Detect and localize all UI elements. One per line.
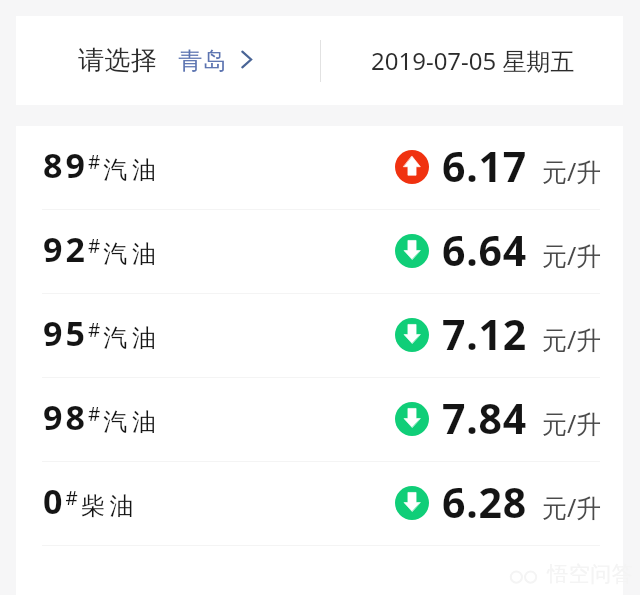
staticText: 元/升 xyxy=(542,406,602,440)
staticText: 元/升 xyxy=(542,238,602,272)
staticText: 95#汽油 xyxy=(43,310,162,356)
staticText: 7.84 xyxy=(442,390,528,446)
other: Price down xyxy=(395,318,429,352)
button[interactable]: 98#汽油 xyxy=(16,378,623,461)
staticText: 98#汽油 xyxy=(43,394,162,440)
button[interactable]: 0#柴油 xyxy=(16,462,623,545)
staticText: 元/升 xyxy=(542,322,602,356)
staticText: 悟空问答 xyxy=(547,561,633,587)
staticText: 6.17 xyxy=(442,138,528,194)
staticText: 0#柴油 xyxy=(43,478,139,524)
staticText: 元/升 xyxy=(542,490,602,524)
staticText: 92#汽油 xyxy=(43,226,162,272)
staticText: 2019-07-05 星期五 xyxy=(371,44,575,77)
other: Price down xyxy=(395,486,429,520)
button[interactable]: 95#汽油 xyxy=(16,294,623,377)
staticText: 青岛 xyxy=(178,46,227,76)
staticText: 89#汽油 xyxy=(43,142,162,188)
staticText: 元/升 xyxy=(542,154,602,188)
other: Price up xyxy=(395,150,429,184)
other: Price down xyxy=(395,234,429,268)
other: Price down xyxy=(395,402,429,436)
button[interactable]: 89#汽油 xyxy=(16,126,623,209)
staticText: 请选择 xyxy=(78,44,158,77)
staticText: 6.64 xyxy=(442,222,528,278)
staticText: 7.12 xyxy=(442,306,528,362)
staticText: 6.28 xyxy=(442,474,528,530)
button[interactable]: 92#汽油 xyxy=(16,210,623,293)
button[interactable]: 请选择 xyxy=(78,38,252,83)
